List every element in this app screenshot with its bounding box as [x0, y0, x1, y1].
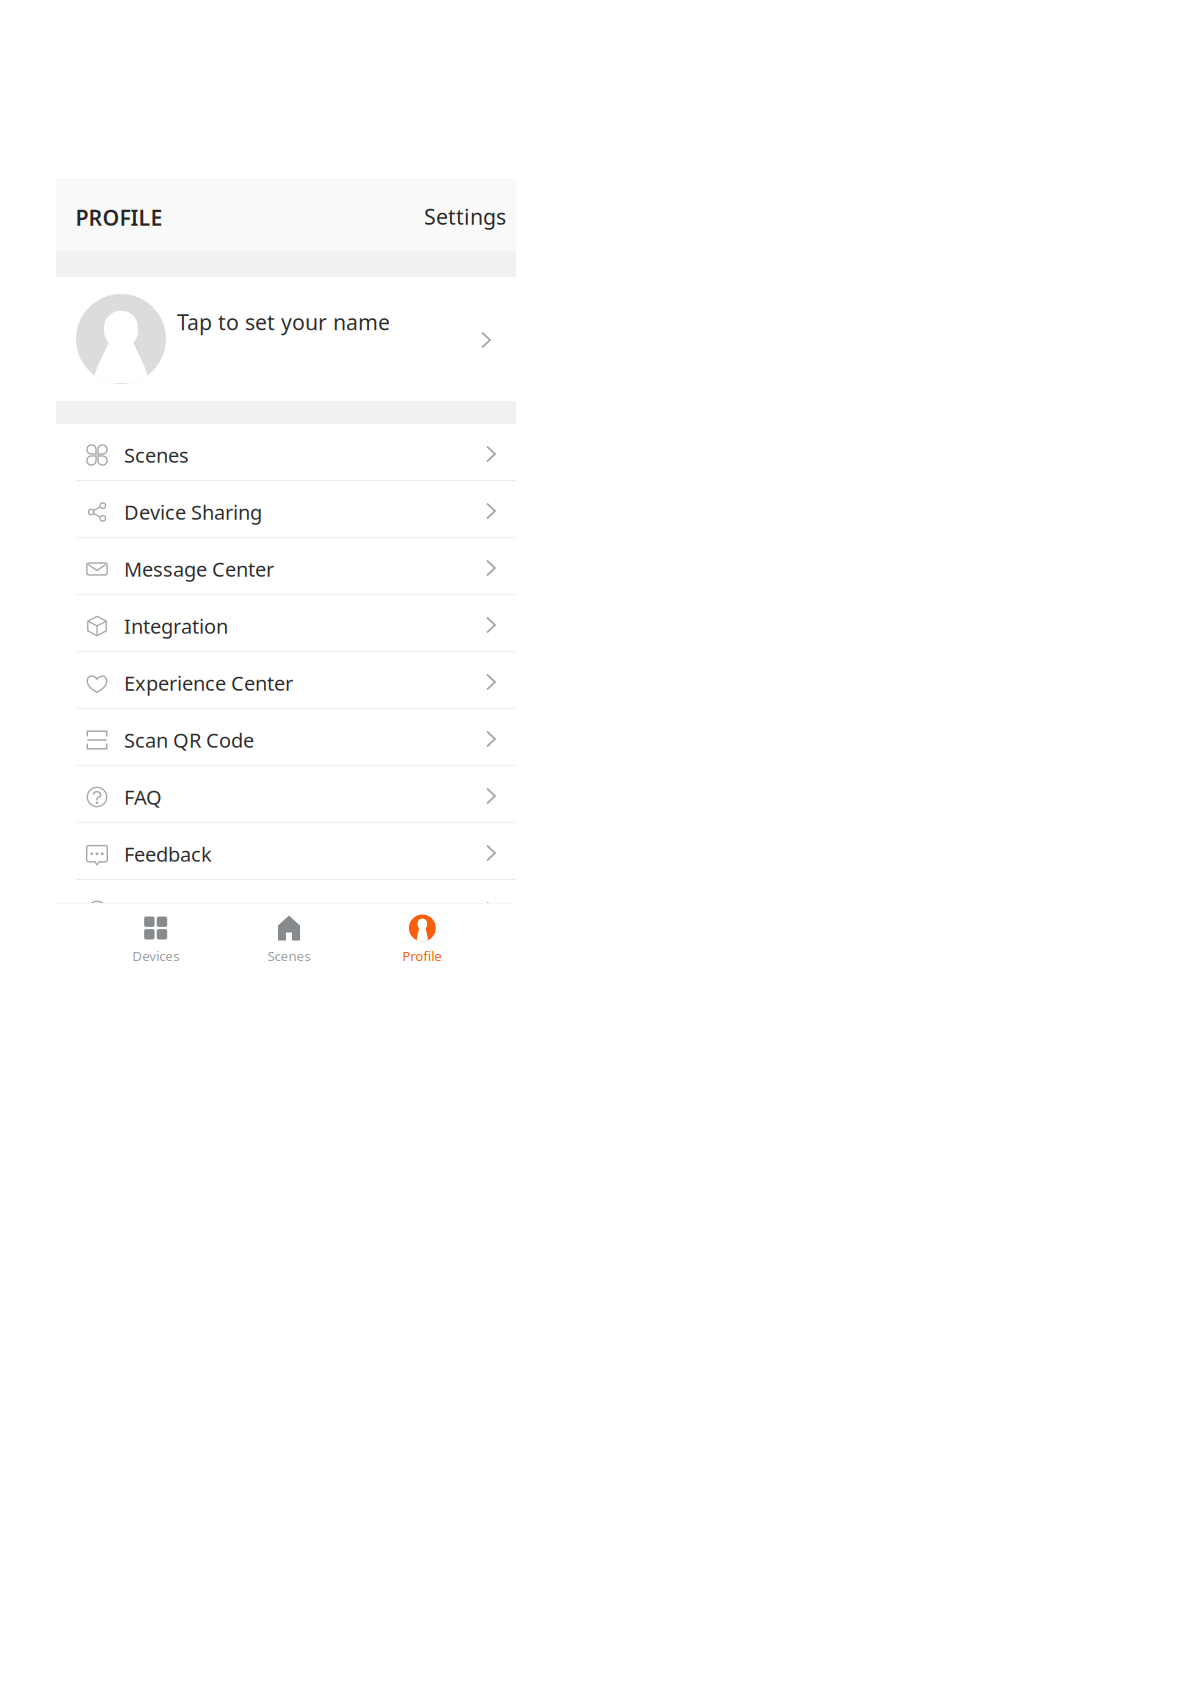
- staticText: Experience Center: [124, 670, 293, 696]
- button[interactable]: About: [56, 880, 516, 937]
- button[interactable]: Feedback: [56, 823, 516, 880]
- staticText: Settings: [424, 202, 506, 231]
- button[interactable]: Integration: [56, 595, 516, 652]
- button[interactable]: Device Sharing: [56, 481, 516, 538]
- staticText: Device Sharing: [124, 499, 262, 525]
- button[interactable]: Scan QR Code: [56, 709, 516, 766]
- staticText: PROFILE: [75, 203, 162, 232]
- staticText: Profile: [402, 947, 442, 965]
- staticText: Scenes: [124, 442, 189, 468]
- staticText: Scenes: [267, 947, 310, 965]
- button[interactable]: Message Center: [56, 538, 516, 595]
- button[interactable]: Devices: [89, 904, 222, 974]
- button[interactable]: Profile: [356, 904, 489, 974]
- button[interactable]: Scenes: [222, 904, 356, 974]
- button[interactable]: Settings: [414, 190, 516, 239]
- button[interactable]: Experience Center: [56, 652, 516, 709]
- staticText: Tap to set your name: [177, 308, 390, 336]
- staticText: Integration: [124, 613, 228, 639]
- button[interactable]: FAQ: [56, 766, 516, 823]
- staticText: Message Center: [124, 556, 274, 582]
- staticText: About: [124, 898, 180, 924]
- staticText: Feedback: [124, 841, 212, 867]
- button[interactable]: Tap to set your name: [56, 277, 516, 401]
- button[interactable]: Scenes: [56, 424, 516, 481]
- staticText: Scan QR Code: [124, 727, 254, 753]
- staticText: FAQ: [124, 784, 162, 810]
- staticText: Devices: [132, 947, 179, 965]
